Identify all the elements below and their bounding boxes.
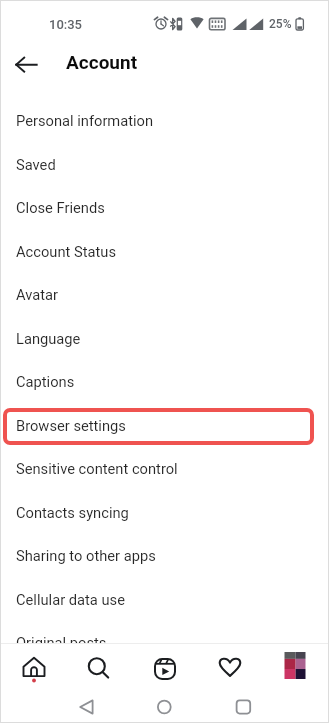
staticText: Avatar	[16, 286, 58, 303]
button[interactable]: Language	[0, 316, 329, 360]
staticText: Captions	[16, 373, 75, 390]
button[interactable]: Account Status	[0, 229, 329, 273]
button[interactable]: Personal information	[0, 98, 329, 142]
staticText: Personal information	[16, 112, 154, 129]
button[interactable]: Sensitive content control	[0, 446, 329, 490]
button[interactable]: Search	[78, 649, 118, 689]
staticText: Account	[66, 51, 138, 73]
staticText: Account Status	[16, 243, 116, 260]
staticText: Sensitive content control	[16, 460, 178, 477]
button[interactable]: Close Friends	[0, 185, 329, 229]
button[interactable]: Avatar	[0, 272, 329, 316]
button[interactable]: Original posts	[0, 620, 329, 644]
button[interactable]: Back	[8, 46, 46, 84]
staticText: 10:35	[49, 17, 83, 32]
button[interactable]: Reels	[145, 649, 185, 689]
button[interactable]: Profile	[275, 649, 315, 689]
staticText: Close Friends	[16, 199, 105, 216]
staticText: 25%	[269, 17, 292, 31]
button[interactable]: Activity	[210, 649, 250, 689]
staticText: Language	[16, 330, 81, 347]
button[interactable]: Captions	[0, 359, 329, 403]
staticText: Saved	[16, 156, 56, 173]
staticText: Contacts syncing	[16, 504, 129, 521]
button[interactable]: Contacts syncing	[0, 490, 329, 534]
staticText: Original posts	[16, 634, 107, 644]
button[interactable]: Browser settings	[0, 403, 329, 447]
button[interactable]: Recent apps	[222, 692, 264, 720]
button[interactable]: Home	[14, 649, 54, 689]
button[interactable]: Cellular data use	[0, 577, 329, 621]
button[interactable]: Back	[66, 692, 108, 720]
button[interactable]: Home	[143, 692, 185, 720]
staticText: Cellular data use	[16, 591, 125, 608]
button[interactable]: Saved	[0, 142, 329, 186]
staticText: Sharing to other apps	[16, 547, 156, 564]
staticText: Browser settings	[16, 417, 126, 434]
button[interactable]: Sharing to other apps	[0, 533, 329, 577]
